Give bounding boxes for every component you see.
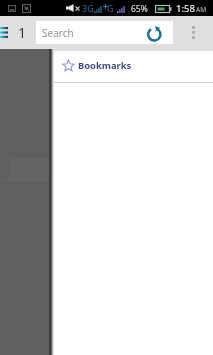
staticText: Search <box>42 26 74 40</box>
staticText: 65% <box>131 3 148 15</box>
button[interactable]: Search <box>36 21 173 44</box>
button[interactable]: Tabs <box>0 16 14 49</box>
staticText: 1 <box>18 23 27 42</box>
staticText: 3G <box>82 2 94 14</box>
button[interactable]: More options <box>182 16 204 49</box>
staticText: 1:58 <box>176 2 195 15</box>
staticText: AM <box>196 5 207 14</box>
button[interactable]: Refresh <box>145 22 166 43</box>
staticText: G <box>107 2 114 14</box>
button[interactable]: Bookmarks <box>0 49 213 82</box>
staticText: Bookmarks <box>78 59 132 72</box>
